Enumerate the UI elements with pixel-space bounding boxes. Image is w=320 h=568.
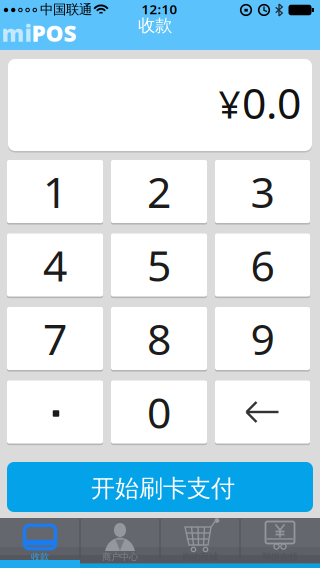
staticText: 网银在线 <box>262 551 298 563</box>
button[interactable]: 8 <box>111 307 207 370</box>
staticText: 4 <box>43 237 67 293</box>
staticText: 0 <box>147 384 171 440</box>
button[interactable]: 购物商城 <box>160 518 240 568</box>
button[interactable]: 9 <box>215 307 310 370</box>
staticText: ¥ <box>218 78 240 129</box>
button[interactable]: 3 <box>215 160 310 223</box>
button[interactable]: 网银在线 <box>240 518 320 568</box>
button[interactable]: 6 <box>215 233 310 296</box>
button[interactable]: 0 <box>111 380 207 443</box>
staticText: 购物商城 <box>182 551 218 563</box>
staticText: 6 <box>250 237 274 293</box>
button[interactable] <box>7 380 103 443</box>
button[interactable]: 5 <box>111 233 207 296</box>
staticText: 5 <box>147 237 171 293</box>
button[interactable]: 4 <box>7 233 103 296</box>
staticText: 7 <box>43 310 67 367</box>
staticText: 9 <box>250 310 274 367</box>
button[interactable] <box>215 380 310 443</box>
button[interactable]: 1 <box>7 160 103 223</box>
button[interactable]: 2 <box>111 160 207 223</box>
staticText: 1 <box>43 163 67 220</box>
staticText: 12:10 <box>141 0 177 18</box>
staticText: 中国联通 <box>40 1 92 18</box>
button[interactable]: 7 <box>7 307 103 370</box>
staticText: 3 <box>250 163 274 220</box>
staticText: 商户中心 <box>102 551 138 563</box>
staticText: 0.0 <box>242 74 301 131</box>
button[interactable]: 商户中心 <box>80 518 160 568</box>
staticText: 2 <box>147 163 171 220</box>
staticText: 8 <box>147 310 171 367</box>
button[interactable]: 收款 <box>0 518 80 568</box>
button[interactable]: 开始刷卡支付 <box>7 462 313 512</box>
staticText: 开始刷卡支付 <box>91 474 235 503</box>
staticText: 收款 <box>138 15 172 36</box>
staticText: 收款 <box>31 551 49 563</box>
staticText: POS <box>31 18 76 48</box>
staticText: mi <box>1 18 31 48</box>
